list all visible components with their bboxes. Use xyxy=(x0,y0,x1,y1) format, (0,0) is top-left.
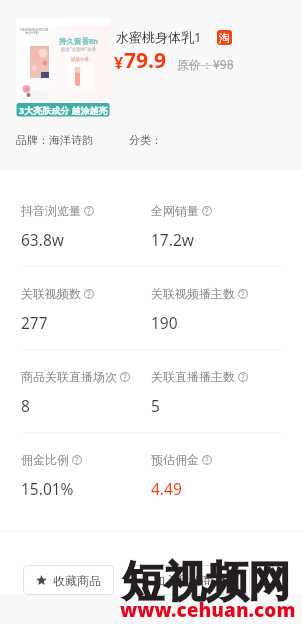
staticText: 63.8w xyxy=(21,229,64,250)
staticText: ? xyxy=(123,372,127,382)
staticText: ? xyxy=(205,455,209,465)
staticText: + 加入我的商品库 xyxy=(143,572,237,588)
staticText: ? xyxy=(87,206,91,216)
staticText: ? xyxy=(241,372,245,382)
staticText: ? xyxy=(205,206,209,216)
staticText: 关联直播播主数 xyxy=(151,369,235,384)
staticText: 拥有"水蜜桃"体香 xyxy=(61,46,97,52)
staticText: 短视频网 xyxy=(122,556,290,609)
staticText: 关联视频播主数 xyxy=(151,286,235,301)
staticText: 277 xyxy=(21,312,48,333)
staticText: 抖音浏览量 xyxy=(21,203,81,218)
staticText: ? xyxy=(75,455,79,465)
staticText: 3大亮肤成分 越涂越亮 xyxy=(19,104,108,116)
staticText: 5 xyxy=(151,395,160,416)
staticText: 190 xyxy=(151,312,178,333)
staticText: 原价：¥98 xyxy=(177,56,234,72)
staticText: 商品关联直播场次 xyxy=(21,369,117,384)
staticText: 佣金比例 xyxy=(21,452,69,467)
staticText: 关联视频数 xyxy=(21,286,81,301)
staticText: 海洋诗韵 xyxy=(25,31,39,35)
staticText: ¥ xyxy=(114,52,124,74)
staticText: 收藏商品 xyxy=(53,573,101,588)
staticText: 15.01% xyxy=(21,478,74,499)
button[interactable]: + 加入我的商品库 xyxy=(130,565,250,595)
staticText: ? xyxy=(87,289,91,299)
staticText: 预估佣金 xyxy=(151,452,199,467)
staticText: 水蜜桃身体乳1 xyxy=(116,28,202,46)
staticText: 79.9 xyxy=(124,46,166,75)
staticText: www.cehuan.com xyxy=(120,597,296,623)
button[interactable]: 收藏商品 xyxy=(23,565,114,595)
staticText: ? xyxy=(241,289,245,299)
staticText: 17.2w xyxy=(151,229,194,250)
staticText: 持久留香8h xyxy=(59,36,99,46)
staticText: 品牌：海洋诗韵 xyxy=(16,133,93,147)
staticText: 淘 xyxy=(219,31,230,45)
staticText: 4.49 xyxy=(151,478,182,499)
staticText: 肌肤沐香 xyxy=(71,57,89,63)
staticText: 分类： xyxy=(129,133,162,147)
staticText: 全网销量 xyxy=(151,203,199,218)
staticText: HAIYANGSHIYUN xyxy=(20,27,49,32)
staticText: 8 xyxy=(21,395,30,416)
